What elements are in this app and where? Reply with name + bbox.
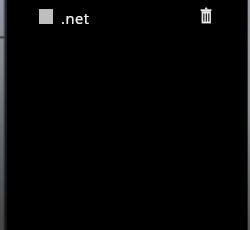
staticText: .net <box>61 8 90 28</box>
button[interactable]: .net <box>31 0 74 33</box>
button[interactable]: Delete <box>193 0 219 31</box>
